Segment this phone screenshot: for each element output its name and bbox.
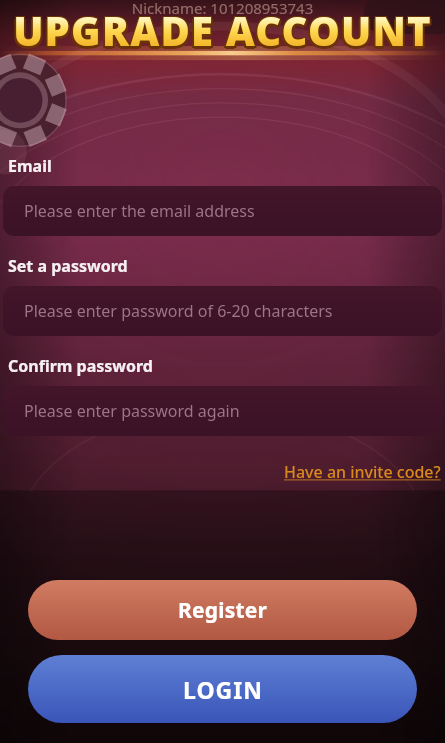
staticText: Have an invite code? — [284, 461, 441, 483]
button[interactable]: Have an invite code? — [283, 459, 442, 485]
button[interactable]: Please enter password of 6-20 characters — [3, 286, 442, 336]
staticText: Register — [178, 596, 268, 625]
staticText: Confirm password — [8, 355, 153, 377]
staticText: UPGRADE ACCOUNT — [2, 5, 445, 59]
staticText: UPGRADE ACCOUNT — [0, 6, 445, 60]
staticText: UPGRADE ACCOUNT — [0, 5, 443, 59]
button[interactable]: Please enter the email address — [3, 186, 442, 236]
staticText: Nickname: 101208953743 — [0, 0, 445, 18]
staticText: UPGRADE ACCOUNT — [1, 2, 445, 56]
button[interactable]: Menu — [364, 0, 445, 34]
staticText: Please enter password of 6-20 characters — [24, 300, 333, 322]
staticText: Please enter the email address — [24, 200, 255, 222]
staticText: Set a password — [8, 255, 128, 277]
staticText: Please enter password again — [24, 400, 240, 422]
staticText: Email — [8, 155, 52, 177]
button[interactable]: Register — [28, 580, 417, 640]
staticText: LOGIN — [183, 674, 263, 705]
staticText: UPGRADE ACCOUNT — [0, 2, 444, 56]
button[interactable]: Please enter password again — [3, 386, 442, 436]
button[interactable]: LOGIN — [28, 655, 417, 723]
staticText: UPGRADE ACCOUNT — [0, 3, 445, 57]
